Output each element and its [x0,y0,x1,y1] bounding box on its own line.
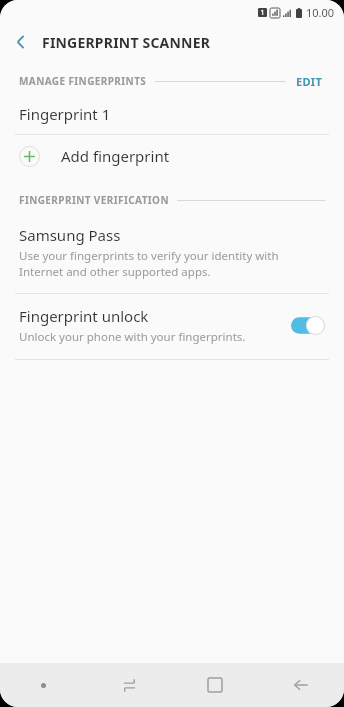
button[interactable]: Samsung Pass [0,213,344,293]
staticText: Use your fingerprints to verify your ide… [19,248,325,279]
button[interactable]: Assistant [0,663,86,707]
staticText: EDIT [296,74,323,89]
staticText: Fingerprint 1 [19,104,111,124]
staticText: Unlock your phone with your fingerprints… [19,329,246,345]
button[interactable]: Fingerprint 1 [0,94,344,134]
button[interactable]: Back [258,663,344,707]
button[interactable]: Recents [86,663,172,707]
staticText: MANAGE FINGERPRINTS [19,74,147,88]
button[interactable]: Home [172,663,258,707]
staticText: 10.00 [306,5,335,20]
button[interactable]: Fingerprint unlock toggle [291,316,325,335]
staticText: Samsung Pass [19,225,121,245]
button[interactable]: Fingerprint unlock [0,294,344,359]
button[interactable]: EDIT [294,72,325,91]
staticText: FINGERPRINT SCANNER [42,33,211,52]
staticText: Add fingerprint [61,146,170,166]
staticText: FINGERPRINT VERIFICATION [19,193,169,207]
button[interactable]: Back [0,24,42,60]
staticText: Fingerprint unlock [19,306,149,326]
button[interactable]: Add fingerprint [0,135,344,177]
